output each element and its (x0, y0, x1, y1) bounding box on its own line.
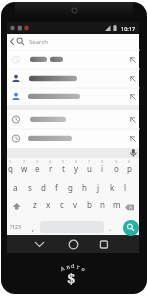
staticText: n (65, 262, 71, 270)
button[interactable]: s (23, 180, 36, 194)
staticText: f (55, 182, 58, 193)
staticText: g (68, 182, 73, 193)
staticText: s (28, 182, 32, 193)
button[interactable]: k (106, 180, 119, 194)
staticText: ?123 (10, 224, 21, 231)
staticText: v (73, 199, 78, 210)
staticText: q (8, 163, 13, 174)
staticText: d (41, 182, 46, 193)
button[interactable] (7, 50, 139, 69)
staticText: p (127, 163, 132, 174)
button[interactable]: n (96, 197, 109, 211)
staticText: 7 (88, 159, 91, 164)
button[interactable] (7, 34, 139, 50)
staticText: d (71, 262, 75, 269)
staticText: l (124, 182, 127, 193)
staticText: 5 (62, 159, 65, 164)
button[interactable]: u (83, 161, 96, 175)
staticText: n (100, 199, 105, 210)
button[interactable]: i (96, 161, 109, 175)
staticText: r (76, 263, 81, 270)
button[interactable]: x (42, 197, 55, 211)
staticText: y (74, 163, 79, 174)
button[interactable] (25, 236, 55, 254)
button[interactable]: g (64, 180, 77, 194)
staticText: i (101, 163, 104, 174)
staticText: o (114, 163, 119, 174)
staticText: . (109, 222, 112, 233)
button[interactable]: a (9, 180, 22, 194)
staticText: 9 (115, 159, 118, 164)
button[interactable]: q (4, 161, 17, 175)
button[interactable]: e (31, 161, 44, 175)
staticText: , (32, 222, 35, 233)
button[interactable] (7, 129, 139, 148)
button[interactable]: ?123 (6, 220, 25, 234)
staticText: z (33, 199, 37, 210)
staticText: t (62, 163, 65, 174)
button[interactable]: p (123, 161, 136, 175)
button[interactable]: c (55, 197, 68, 211)
button[interactable]: o (110, 161, 123, 175)
button[interactable]: r (44, 161, 57, 175)
button[interactable]: , (29, 220, 38, 234)
staticText: h (82, 182, 87, 193)
button[interactable] (59, 236, 89, 254)
staticText: 2 (23, 159, 26, 164)
button[interactable] (123, 220, 139, 236)
button[interactable]: m (110, 197, 123, 211)
button[interactable]: l (119, 180, 132, 194)
button[interactable]: z (28, 197, 41, 211)
button[interactable]: . (106, 220, 115, 234)
staticText: b (87, 199, 92, 210)
staticText: e (35, 163, 40, 174)
staticText: j (97, 182, 100, 193)
button[interactable]: h (78, 180, 91, 194)
button[interactable]: j (92, 180, 105, 194)
staticText: k (110, 182, 115, 193)
staticText: u (87, 163, 92, 174)
button[interactable]: f (50, 180, 63, 194)
button[interactable] (7, 69, 139, 88)
staticText: 10:17 (121, 25, 136, 32)
staticText: 8 (101, 159, 104, 164)
staticText: m (113, 199, 121, 210)
staticText: 3 (36, 159, 39, 164)
staticText: x (46, 199, 51, 210)
button[interactable]: d (37, 180, 50, 194)
button[interactable]: b (83, 197, 96, 211)
staticText: 0 (128, 159, 131, 164)
staticText: w (21, 163, 28, 174)
button[interactable] (7, 110, 139, 129)
staticText: a (13, 182, 18, 193)
button[interactable]: w (18, 161, 31, 175)
staticText: 1 (9, 159, 12, 164)
button[interactable]: t (57, 161, 70, 175)
staticText: Search (29, 38, 48, 46)
button[interactable]: v (69, 197, 82, 211)
staticText: 6 (75, 159, 78, 164)
button[interactable] (90, 236, 120, 254)
staticText: 4 (49, 159, 52, 164)
staticText: A (59, 264, 65, 272)
staticText: c (60, 199, 64, 210)
button[interactable]: y (70, 161, 83, 175)
button[interactable] (7, 88, 139, 105)
staticText: o (80, 265, 87, 273)
staticText: r (49, 163, 53, 174)
staticText: $ (67, 268, 76, 288)
